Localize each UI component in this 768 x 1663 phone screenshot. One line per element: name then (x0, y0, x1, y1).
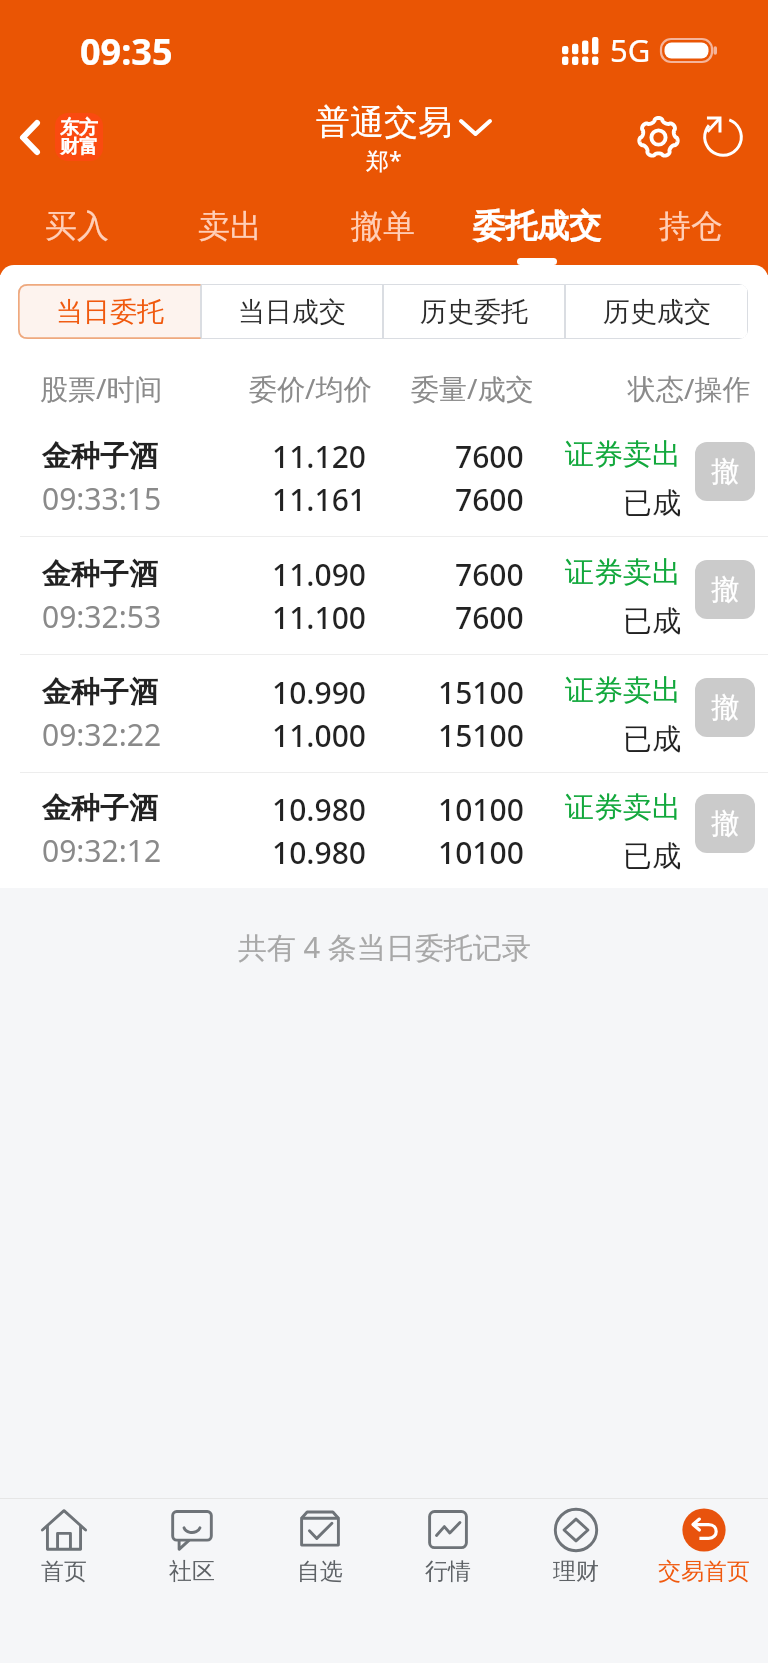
staticText: 当日成交 (238, 295, 346, 329)
staticText: 09:32:53 (42, 596, 162, 637)
staticText: 已成 (623, 603, 681, 640)
button[interactable]: 金种子酒 (0, 655, 768, 773)
staticText: 金种子酒 (42, 790, 158, 827)
staticText: 09:32:22 (42, 714, 162, 755)
staticText: 11.120 (272, 436, 366, 477)
button[interactable]: 当日成交 (202, 285, 382, 338)
button[interactable]: 委托成交 (460, 178, 614, 266)
staticText: 撤 (711, 690, 739, 725)
staticText: 11.100 (272, 597, 366, 638)
staticText: 金种子酒 (42, 674, 158, 711)
staticText: 自选 (297, 1557, 343, 1586)
button[interactable]: 撤单 (306, 178, 460, 266)
staticText: 首页 (41, 1557, 87, 1586)
staticText: 11.161 (272, 479, 366, 520)
staticText: 股票/时间 (40, 369, 163, 407)
staticText: 10.980 (272, 789, 366, 830)
button[interactable]: Settings (634, 113, 682, 161)
button[interactable]: 撤 (695, 560, 755, 619)
button[interactable]: 行情 (384, 1499, 512, 1663)
staticText: 委量/成交 (411, 369, 534, 407)
staticText: 15100 (438, 672, 524, 713)
staticText: 证券卖出 (565, 672, 681, 709)
staticText: 已成 (623, 721, 681, 758)
staticText: 委价/均价 (249, 369, 372, 407)
staticText: 交易首页 (658, 1557, 750, 1586)
staticText: 7600 (455, 597, 524, 638)
button[interactable]: 卖出 (153, 178, 306, 266)
staticText: 已成 (623, 485, 681, 522)
button[interactable]: 买入 (0, 178, 153, 266)
staticText: 证券卖出 (565, 789, 681, 826)
button[interactable]: 理财 (512, 1499, 640, 1663)
staticText: 买入 (45, 206, 109, 246)
button[interactable]: 金种子酒 (0, 419, 768, 537)
staticText: 7600 (455, 479, 524, 520)
staticText: 持仓 (659, 206, 723, 246)
staticText: 09:33:15 (42, 478, 162, 519)
staticText: 金种子酒 (42, 556, 158, 593)
button[interactable]: Back (16, 113, 107, 161)
staticText: 09:32:12 (42, 830, 162, 871)
staticText: 行情 (425, 1557, 471, 1586)
button[interactable]: Refresh (702, 114, 748, 160)
staticText: 撤 (711, 806, 739, 841)
staticText: 09:35 (80, 27, 173, 76)
staticText: 共有 4 条当日委托记录 (238, 927, 531, 967)
staticText: 10.980 (272, 832, 366, 873)
button[interactable]: 当日委托 (19, 285, 200, 338)
staticText: 5G (610, 29, 651, 71)
button[interactable]: 持仓 (614, 178, 768, 266)
staticText: 委托成交 (473, 206, 601, 246)
button[interactable]: 自选 (256, 1499, 384, 1663)
staticText: 撤单 (351, 206, 415, 246)
staticText: 当日委托 (56, 295, 164, 329)
staticText: 历史委托 (420, 295, 528, 329)
staticText: 10.990 (272, 672, 366, 713)
staticText: 已成 (623, 838, 681, 875)
button[interactable]: 交易首页 (640, 1499, 768, 1663)
staticText: 郑* (366, 144, 402, 175)
staticText: 东方 财富 (60, 116, 98, 159)
staticText: 10100 (438, 832, 524, 873)
staticText: 理财 (553, 1557, 599, 1586)
staticText: 11.000 (272, 715, 366, 756)
staticText: 撤 (711, 454, 739, 489)
button[interactable]: 社区 (128, 1499, 256, 1663)
staticText: 普通交易 (316, 101, 452, 144)
staticText: 证券卖出 (565, 436, 681, 473)
button[interactable]: 金种子酒 (0, 773, 768, 888)
staticText: 社区 (169, 1557, 215, 1586)
staticText: 历史成交 (603, 295, 711, 329)
staticText: 11.090 (272, 554, 366, 595)
staticText: 金种子酒 (42, 438, 158, 475)
button[interactable]: 历史成交 (566, 285, 747, 338)
staticText: 状态/操作 (628, 369, 751, 407)
staticText: 撤 (711, 572, 739, 607)
button[interactable]: 撤 (695, 794, 755, 853)
staticText: 卖出 (198, 206, 262, 246)
button[interactable]: 撤 (695, 442, 755, 501)
button[interactable]: 首页 (0, 1499, 128, 1663)
staticText: 10100 (438, 789, 524, 830)
button[interactable]: 金种子酒 (0, 537, 768, 655)
button[interactable]: 撤 (695, 678, 755, 737)
staticText: 证券卖出 (565, 554, 681, 591)
staticText: 7600 (455, 436, 524, 477)
button[interactable]: 历史委托 (384, 285, 564, 338)
staticText: 15100 (438, 715, 524, 756)
staticText: 7600 (455, 554, 524, 595)
